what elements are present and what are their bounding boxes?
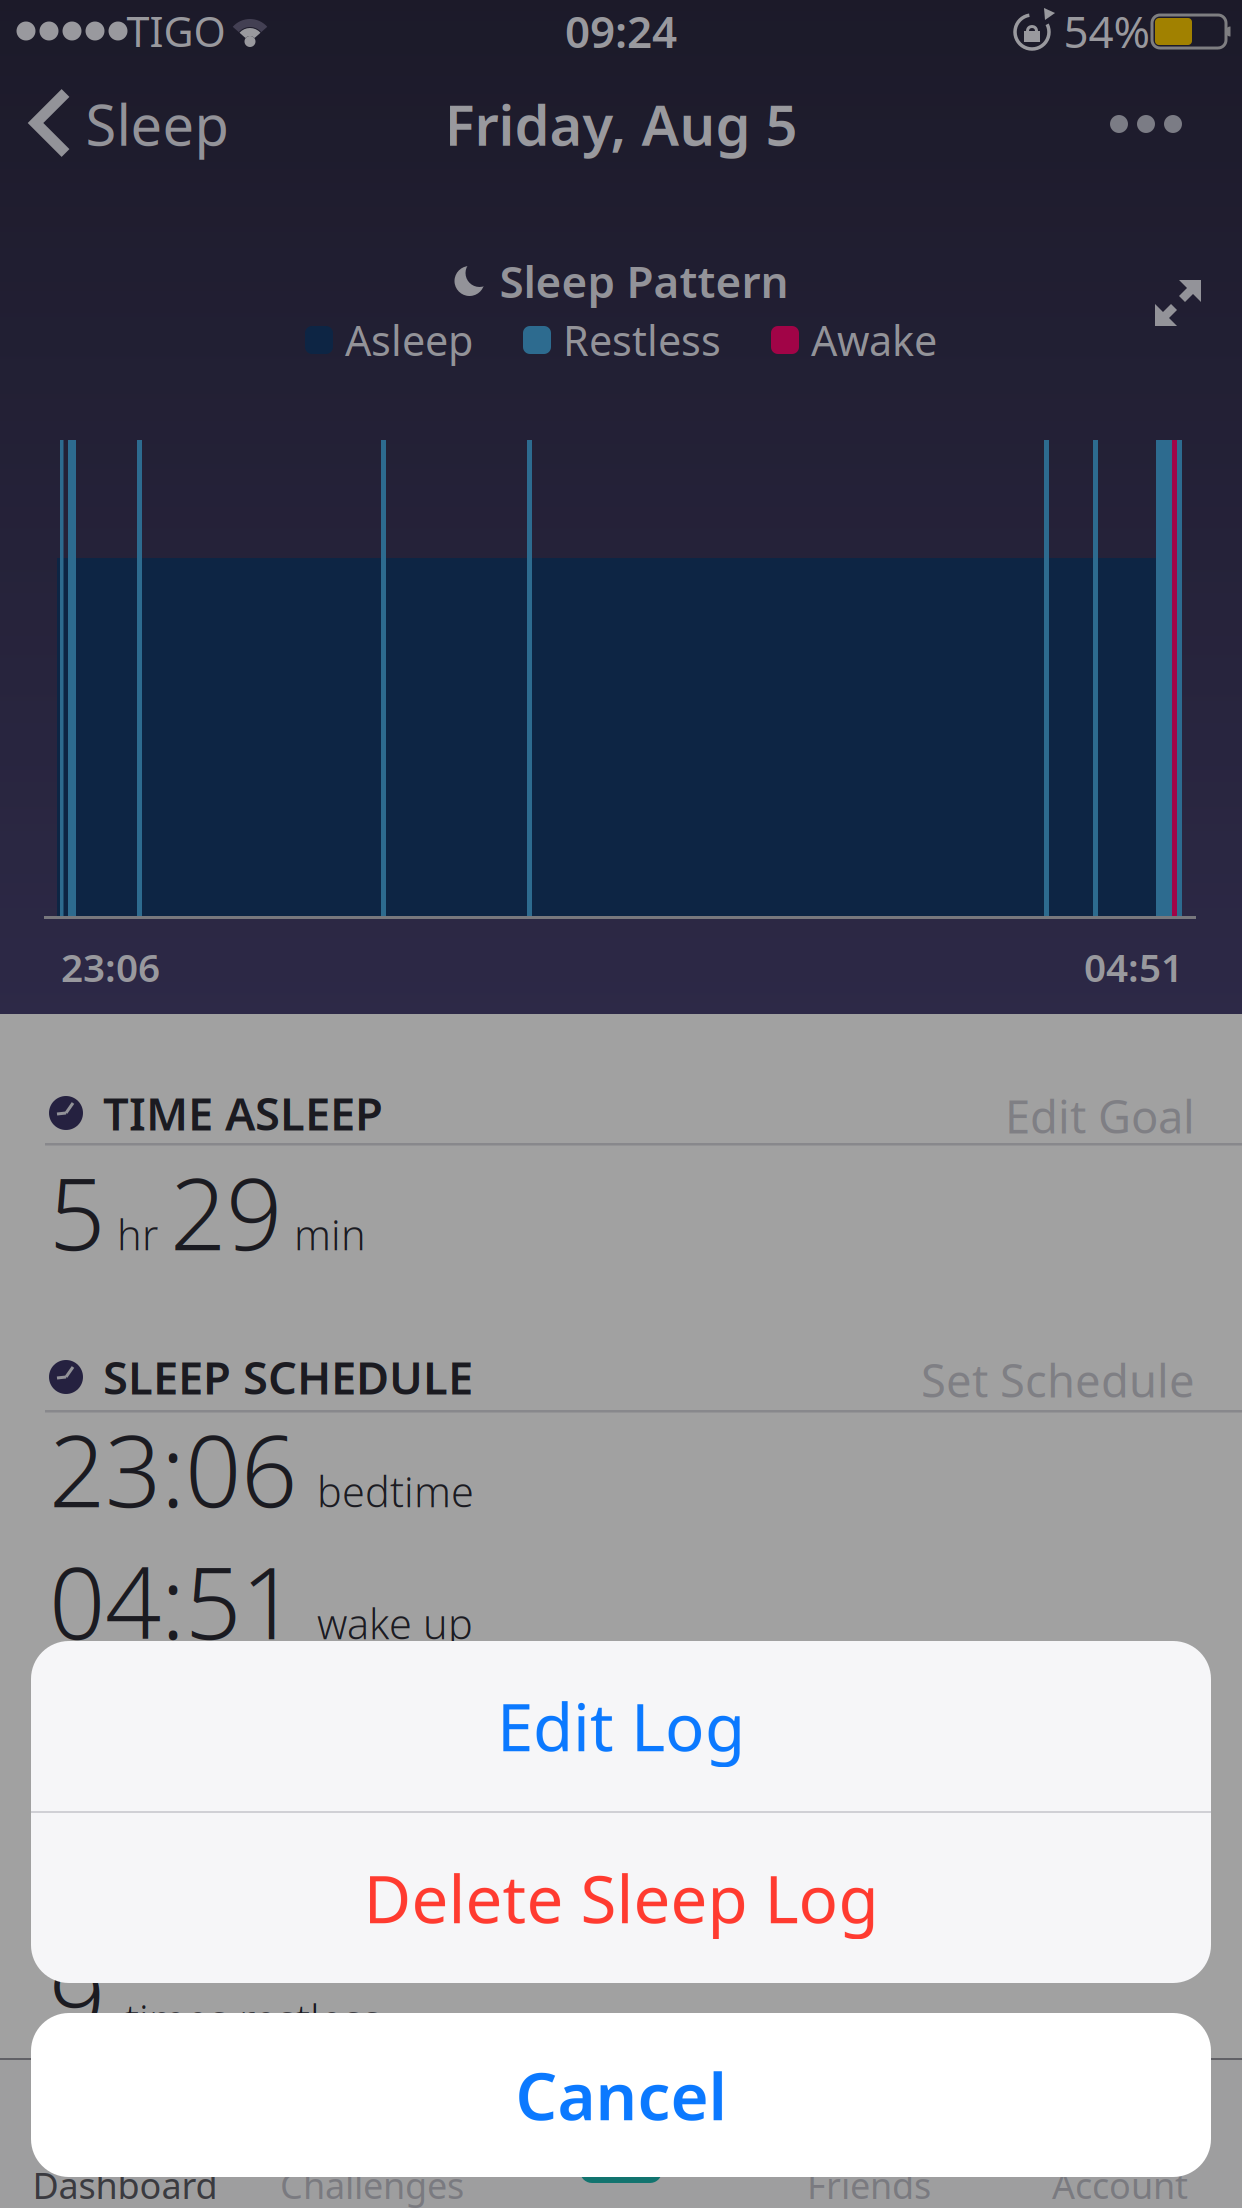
staticText: Sleep	[85, 87, 228, 161]
staticText: hr	[117, 1207, 158, 1262]
button[interactable]: Delete Sleep Log	[31, 1813, 1211, 1983]
staticText: 09:24	[565, 2, 677, 60]
button[interactable]: Friends	[754, 2115, 984, 2208]
staticText: 23:06	[49, 1403, 297, 1534]
button[interactable]: Expand chart	[1153, 278, 1203, 328]
staticText: Edit Goal	[1005, 1086, 1195, 1146]
staticText: Dashboard	[32, 2161, 217, 2208]
staticText: times restless	[125, 1992, 381, 2047]
button[interactable]: Cancel	[31, 2013, 1211, 2177]
button[interactable]: More	[1110, 115, 1182, 133]
button[interactable]: Account	[1005, 2115, 1235, 2208]
staticText: bedtime	[317, 1464, 474, 1519]
button[interactable]: Sleep	[35, 87, 228, 161]
staticText: 04:51	[49, 1535, 297, 1666]
staticText: Sleep Pattern	[499, 252, 788, 310]
staticText: Cancel	[515, 2052, 726, 2138]
staticText: 23:06	[61, 941, 160, 993]
staticText: 04:51	[1084, 941, 1183, 993]
button[interactable]: Edit Log	[31, 1641, 1211, 1811]
staticText: Friday, Aug 5	[444, 87, 797, 161]
staticText: Awake	[811, 313, 937, 367]
staticText: Friends	[807, 2161, 931, 2208]
button[interactable]: Log	[580, 2131, 662, 2183]
button[interactable]: Challenges	[257, 2115, 487, 2208]
staticText: Edit Log	[497, 1683, 745, 1769]
staticText: Asleep	[345, 313, 473, 367]
button[interactable]: Edit Goal	[1005, 1086, 1195, 1146]
staticText: 9	[49, 1931, 105, 2062]
staticText: SLEEP SCHEDULE	[103, 1347, 473, 1407]
staticText: Delete Sleep Log	[363, 1855, 878, 1941]
button[interactable]: Set Schedule	[921, 1350, 1195, 1410]
staticText: Account	[1052, 2161, 1188, 2208]
staticText: TIME ASLEEP	[103, 1083, 383, 1143]
staticText: wake up	[317, 1596, 473, 1651]
staticText: 5	[49, 1146, 105, 1277]
staticText: Restless	[563, 313, 721, 367]
staticText: Set Schedule	[921, 1350, 1195, 1410]
button[interactable]: Dashboard	[10, 2115, 240, 2208]
staticText: 54%	[1063, 2, 1150, 60]
staticText: min	[294, 1207, 366, 1262]
staticText: Challenges	[280, 2161, 464, 2208]
staticText: 29	[170, 1146, 282, 1277]
staticText: TIGO	[126, 4, 225, 58]
